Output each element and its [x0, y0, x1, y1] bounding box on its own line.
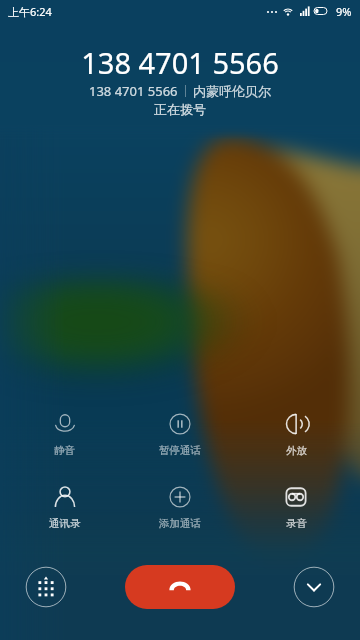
- staticText: 138 4701 5566: [89, 82, 178, 100]
- button[interactable]: Dialpad: [24, 565, 68, 609]
- staticText: 通讯录: [49, 517, 81, 530]
- button[interactable]: 暂停通话: [122, 412, 238, 457]
- staticText: 添加通话: [159, 517, 201, 530]
- staticText: 暂停通话: [159, 444, 201, 457]
- button[interactable]: 通讯录: [7, 485, 122, 530]
- staticText: 9%: [336, 4, 352, 19]
- button[interactable]: 添加通话: [122, 485, 238, 530]
- button[interactable]: End call: [125, 565, 235, 609]
- button[interactable]: 外放: [238, 412, 354, 457]
- staticText: 录音: [286, 517, 307, 530]
- staticText: 静音: [54, 444, 75, 457]
- staticText: 内蒙呼伦贝尔: [193, 83, 271, 99]
- staticText: 外放: [286, 444, 307, 457]
- staticText: 138 4701 5566: [0, 43, 360, 82]
- button[interactable]: 静音: [7, 412, 122, 457]
- staticText: 上午6:24: [8, 4, 52, 19]
- button[interactable]: Collapse: [292, 565, 336, 609]
- staticText: 正在拨号: [0, 101, 360, 117]
- button[interactable]: 录音: [238, 485, 354, 530]
